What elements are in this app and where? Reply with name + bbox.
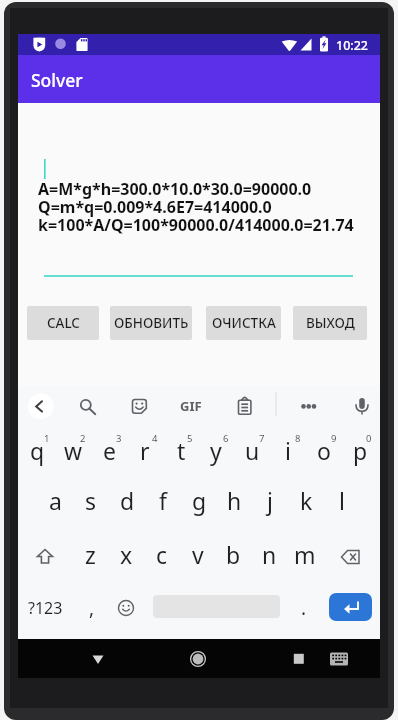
staticText: 9	[331, 432, 337, 445]
staticText: ?123	[28, 597, 63, 619]
button[interactable]: Backspace	[333, 534, 369, 580]
staticText: ОЧИСТКА	[212, 314, 276, 332]
button[interactable]: o	[306, 427, 342, 473]
staticText: r	[140, 435, 150, 466]
button[interactable]: c	[144, 531, 180, 577]
button[interactable]: ,	[78, 586, 106, 630]
staticText: l	[339, 485, 345, 516]
button[interactable]: h	[216, 477, 252, 523]
button[interactable]: More options	[290, 390, 322, 422]
staticText: d	[120, 485, 135, 516]
staticText: 2	[80, 432, 86, 445]
button[interactable]: Emoji	[110, 586, 142, 630]
button[interactable]: v	[180, 531, 216, 577]
staticText: GIF	[180, 397, 202, 415]
button[interactable]: GIF	[175, 390, 207, 422]
button[interactable]: s	[73, 477, 109, 523]
staticText: j	[267, 485, 273, 516]
button[interactable]: i	[270, 427, 306, 473]
staticText: f	[159, 485, 167, 516]
staticText: .	[301, 595, 307, 621]
staticText: y	[210, 435, 222, 466]
button[interactable]: a	[37, 477, 73, 523]
button[interactable]: u	[234, 427, 270, 473]
button[interactable]: ОЧИСТКА	[206, 306, 281, 340]
button[interactable]: Recents	[283, 643, 315, 675]
button[interactable]: g	[181, 477, 217, 523]
staticText: b	[226, 539, 241, 570]
staticText: g	[192, 485, 207, 516]
staticText: v	[192, 539, 204, 570]
button[interactable]: w	[55, 427, 91, 473]
button[interactable]: p	[342, 427, 378, 473]
staticText: c	[156, 539, 168, 570]
button[interactable]: d	[109, 477, 145, 523]
button[interactable]: x	[108, 531, 144, 577]
button[interactable]: ?123	[23, 586, 67, 630]
staticText: Solver	[31, 68, 83, 92]
button[interactable]: l	[324, 477, 360, 523]
button[interactable]: Search	[70, 390, 102, 422]
staticText: 0	[366, 432, 372, 445]
staticText: k=100*A/Q=100*90000.0/414000.0=21.74	[38, 214, 354, 236]
button[interactable]: q	[19, 427, 55, 473]
button[interactable]: Back	[25, 390, 57, 422]
staticText: 10:22	[336, 37, 369, 54]
staticText: o	[317, 435, 331, 466]
staticText: k	[300, 485, 313, 516]
staticText: ,	[89, 595, 95, 621]
staticText: 7	[259, 432, 265, 445]
button[interactable]: Solver	[18, 55, 380, 103]
staticText: ОБНОВИТЬ	[114, 314, 189, 332]
staticText: 1	[44, 432, 50, 445]
staticText: a	[49, 485, 62, 516]
staticText: p	[353, 435, 368, 466]
button[interactable]: CALC	[27, 306, 99, 340]
staticText: w	[64, 435, 83, 466]
button[interactable]: Stickers	[123, 390, 155, 422]
button[interactable]: j	[252, 477, 288, 523]
staticText: e	[103, 435, 116, 466]
button[interactable]: Switch keyboard	[325, 643, 353, 675]
button[interactable]: Back	[82, 643, 114, 675]
button[interactable]: Clipboard	[229, 390, 261, 422]
button[interactable]: y	[198, 427, 234, 473]
button[interactable]: m	[287, 531, 323, 577]
staticText: q	[30, 435, 45, 466]
button[interactable]: ОБНОВИТЬ	[110, 306, 192, 340]
staticText: 4	[152, 432, 158, 445]
button[interactable]: f	[145, 477, 181, 523]
staticText: ВЫХОД	[306, 314, 355, 332]
staticText: i	[285, 435, 291, 466]
staticText: 8	[295, 432, 301, 445]
staticText: CALC	[47, 314, 80, 332]
staticText: s	[85, 485, 97, 516]
button[interactable]: .	[290, 586, 318, 630]
button[interactable]: b	[215, 531, 251, 577]
staticText: n	[262, 539, 277, 570]
staticText: h	[227, 485, 242, 516]
button[interactable]: n	[251, 531, 287, 577]
staticText: z	[85, 539, 96, 570]
button[interactable]: e	[91, 427, 127, 473]
staticText: u	[245, 435, 260, 466]
button[interactable]: k	[288, 477, 324, 523]
staticText: Q=m*q=0.009*4.6E7=414000.0	[38, 196, 272, 218]
staticText: 5	[187, 432, 193, 445]
button[interactable]: Home	[182, 643, 214, 675]
staticText: t	[177, 435, 186, 466]
button[interactable]: z	[72, 531, 108, 577]
staticText: 3	[116, 432, 122, 445]
button[interactable]: ВЫХОД	[293, 306, 367, 340]
button[interactable]: Voice input	[346, 390, 378, 422]
staticText: m	[294, 539, 316, 570]
button[interactable]: Enter	[329, 593, 372, 621]
button[interactable]: Shift	[27, 534, 63, 580]
button[interactable]: t	[163, 427, 199, 473]
staticText: A=M*g*h=300.0*10.0*30.0=90000.0	[38, 178, 312, 200]
button[interactable]: r	[127, 427, 163, 473]
staticText: x	[120, 539, 133, 570]
staticText: 6	[223, 432, 229, 445]
